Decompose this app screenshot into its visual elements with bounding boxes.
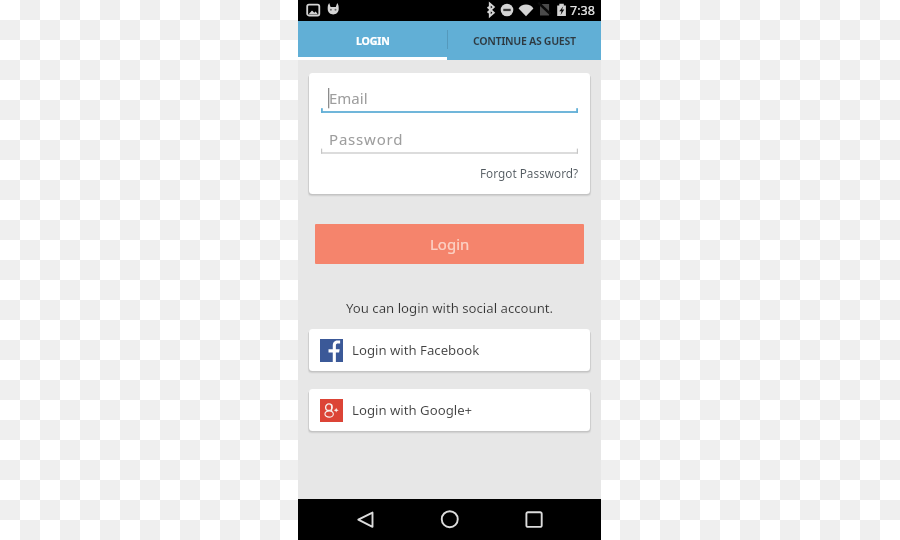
button[interactable]: Login with Google+	[309, 389, 590, 431]
staticText: Forgot Password?	[480, 165, 579, 181]
staticText: 7:38	[570, 2, 595, 19]
button[interactable]: Home	[424, 499, 474, 540]
staticText: Password	[329, 129, 404, 149]
button[interactable]: Recents	[506, 499, 556, 540]
staticText: LOGIN	[356, 34, 390, 48]
button[interactable]: LOGIN	[298, 21, 447, 60]
staticText: CONTINUE AS GUEST	[473, 34, 576, 48]
staticText: Login	[430, 234, 470, 254]
button[interactable]: Forgot Password?	[480, 165, 579, 181]
staticText: Login with Facebook	[352, 341, 480, 359]
staticText: You can login with social account.	[346, 299, 554, 317]
button[interactable]: CONTINUE AS GUEST	[448, 21, 601, 60]
button[interactable]: Login	[315, 224, 584, 264]
staticText: Email	[329, 88, 368, 108]
button[interactable]: Back	[338, 499, 388, 540]
staticText: Login with Google+	[352, 401, 473, 419]
button[interactable]: Login with Facebook	[309, 329, 590, 371]
